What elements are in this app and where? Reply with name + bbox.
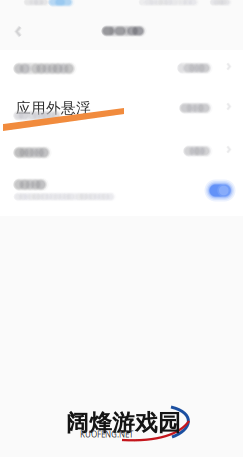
staticText: 阔烽游戏园 [66,409,181,437]
button[interactable]: Back [11,23,29,40]
staticText: KUOFENG.NET [80,429,133,440]
staticText: 应用外悬浮 [16,99,91,117]
